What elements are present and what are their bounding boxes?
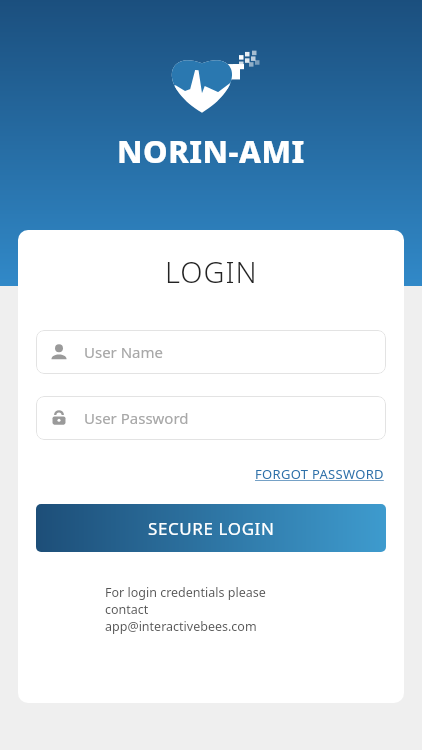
- staticText: LOGIN: [165, 252, 258, 291]
- staticText: User Password: [84, 408, 189, 428]
- other: User name: [50, 343, 68, 361]
- staticText: For login credentials please: [105, 584, 266, 601]
- staticText: FORGOT PASSWORD: [255, 465, 384, 483]
- button[interactable]: User name: [36, 330, 386, 374]
- staticText: SECURE LOGIN: [148, 517, 275, 540]
- button[interactable]: FORGOT PASSWORD: [253, 462, 386, 486]
- staticText: app@interactivebees.com: [105, 618, 257, 635]
- button[interactable]: SECURE LOGIN: [36, 504, 386, 552]
- other: Norin-AMI logo: [161, 50, 261, 114]
- other: Password: [50, 409, 68, 427]
- button[interactable]: Password: [36, 396, 386, 440]
- staticText: contact: [105, 601, 149, 618]
- staticText: User Name: [84, 342, 164, 362]
- staticText: NORIN-AMI: [117, 130, 305, 172]
